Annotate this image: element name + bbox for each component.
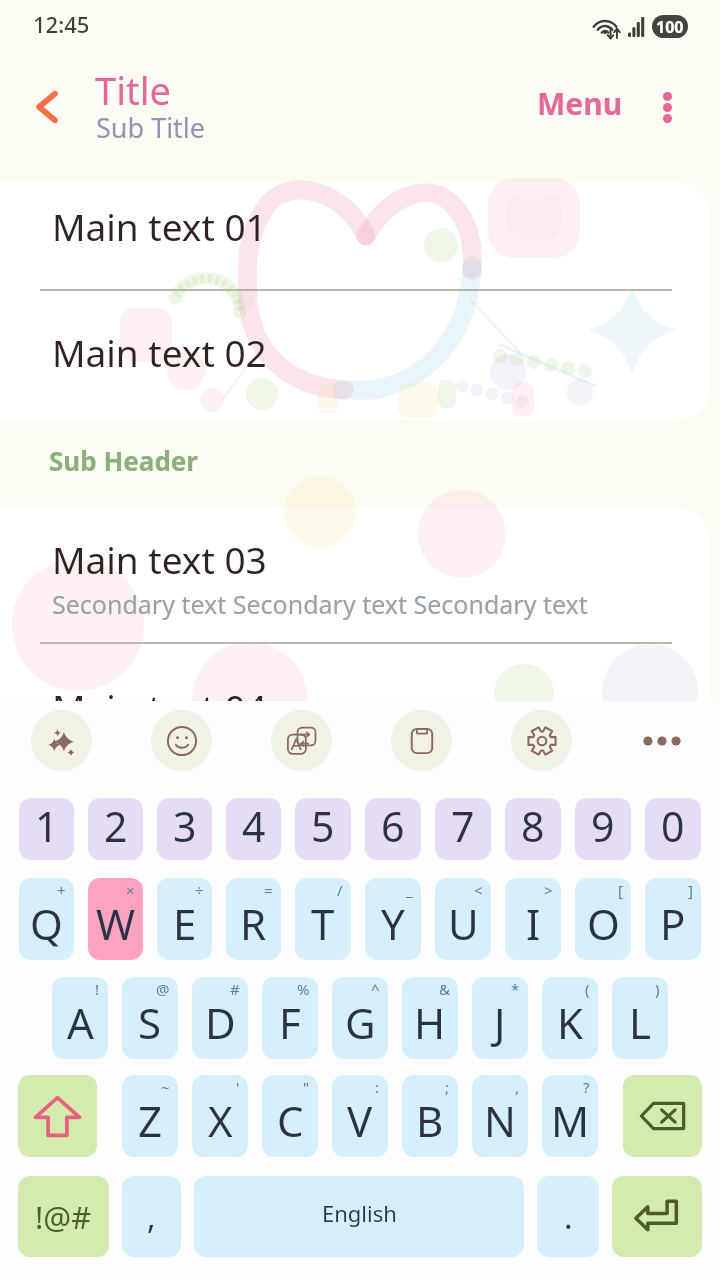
button[interactable]: F: [262, 977, 318, 1059]
button[interactable]: ,: [122, 1176, 181, 1257]
button[interactable]: Backspace: [623, 1075, 702, 1157]
staticText: ?: [583, 1077, 590, 1097]
button[interactable]: Y: [365, 878, 421, 960]
staticText: I: [526, 895, 541, 952]
staticText: 6: [381, 798, 405, 852]
button[interactable]: Enter: [612, 1176, 702, 1257]
staticText: !: [95, 979, 100, 999]
button[interactable]: C: [262, 1075, 318, 1157]
staticText: ]: [688, 880, 693, 900]
button[interactable]: Back: [17, 77, 77, 137]
staticText: /: [337, 880, 343, 900]
button[interactable]: Menu: [521, 71, 639, 136]
staticText: Menu: [537, 83, 623, 124]
staticText: Y: [381, 895, 405, 952]
staticText: .: [564, 1195, 573, 1239]
staticText: ': [236, 1077, 240, 1097]
staticText: H: [414, 994, 446, 1051]
staticText: O: [587, 895, 620, 952]
button[interactable]: Main text 04: [0, 644, 720, 768]
button[interactable]: P: [645, 878, 701, 960]
staticText: U: [448, 895, 479, 952]
button[interactable]: Z: [122, 1075, 178, 1157]
staticText: F: [279, 994, 301, 1051]
staticText: ^: [371, 979, 380, 999]
button[interactable]: 2: [88, 798, 143, 860]
button[interactable]: I: [505, 878, 561, 960]
staticText: Main text 04: [52, 682, 267, 732]
staticText: ,: [515, 1077, 520, 1097]
button[interactable]: Main text 01: [0, 182, 720, 289]
staticText: Sub Header: [49, 443, 198, 478]
button[interactable]: H: [402, 977, 458, 1059]
button[interactable]: .: [537, 1176, 599, 1257]
staticText: Title: [95, 64, 171, 116]
button[interactable]: E: [157, 878, 212, 960]
button[interactable]: N: [472, 1075, 528, 1157]
button[interactable]: U: [435, 878, 491, 960]
button[interactable]: G: [332, 977, 388, 1059]
button[interactable]: Q: [19, 878, 74, 960]
staticText: D: [205, 994, 236, 1051]
button[interactable]: 4: [226, 798, 281, 860]
button[interactable]: Clipboard: [391, 710, 452, 771]
button[interactable]: !@#: [18, 1176, 109, 1257]
button[interactable]: O: [575, 878, 631, 960]
button[interactable]: D: [192, 977, 248, 1059]
staticText: 0: [661, 798, 685, 852]
button[interactable]: 5: [295, 798, 351, 860]
staticText: >: [544, 880, 553, 900]
staticText: English: [322, 1198, 397, 1228]
staticText: *: [511, 979, 520, 999]
button[interactable]: Sparkle: [31, 710, 92, 771]
button[interactable]: More options: [638, 78, 696, 136]
button[interactable]: 9: [575, 798, 631, 860]
staticText: W: [96, 895, 136, 952]
button[interactable]: 8: [505, 798, 561, 860]
button[interactable]: X: [192, 1075, 248, 1157]
staticText: Main text 02: [52, 327, 267, 377]
button[interactable]: M: [542, 1075, 598, 1157]
button[interactable]: B: [402, 1075, 458, 1157]
button[interactable]: 7: [435, 798, 491, 860]
button[interactable]: R: [226, 878, 281, 960]
button[interactable]: S: [122, 977, 178, 1059]
staticText: #: [230, 979, 240, 999]
staticText: A: [67, 994, 94, 1051]
button[interactable]: J: [472, 977, 528, 1059]
staticText: G: [345, 994, 376, 1051]
staticText: Z: [138, 1092, 163, 1149]
button[interactable]: Emoji: [151, 710, 212, 771]
button[interactable]: T: [295, 878, 351, 960]
button[interactable]: Shift: [18, 1075, 97, 1157]
staticText: [: [618, 880, 623, 900]
button[interactable]: Main text 02: [0, 291, 720, 420]
staticText: B: [416, 1092, 444, 1149]
staticText: N: [484, 1092, 516, 1149]
staticText: 1: [35, 798, 59, 852]
button[interactable]: 0: [645, 798, 701, 860]
staticText: (: [585, 979, 590, 999]
button[interactable]: L: [612, 977, 668, 1059]
button[interactable]: English: [194, 1176, 524, 1257]
button[interactable]: A: [52, 977, 108, 1059]
button[interactable]: Translate: [271, 710, 332, 771]
button[interactable]: 6: [365, 798, 421, 860]
staticText: 3: [173, 798, 197, 852]
staticText: Q: [30, 895, 63, 952]
staticText: &: [439, 979, 450, 999]
button[interactable]: Settings: [511, 710, 572, 771]
staticText: Main text 01: [52, 201, 267, 251]
staticText: 8: [521, 798, 545, 852]
button[interactable]: 1: [19, 798, 74, 860]
staticText: ": [303, 1077, 310, 1097]
button[interactable]: K: [542, 977, 598, 1059]
button[interactable]: W: [88, 878, 143, 960]
button[interactable]: V: [332, 1075, 388, 1157]
button[interactable]: 3: [157, 798, 212, 860]
button[interactable]: Main text 03: [0, 508, 720, 642]
button[interactable]: More: [631, 710, 692, 771]
staticText: @: [156, 979, 170, 999]
staticText: 12:45: [33, 9, 90, 39]
staticText: X: [208, 1092, 233, 1149]
